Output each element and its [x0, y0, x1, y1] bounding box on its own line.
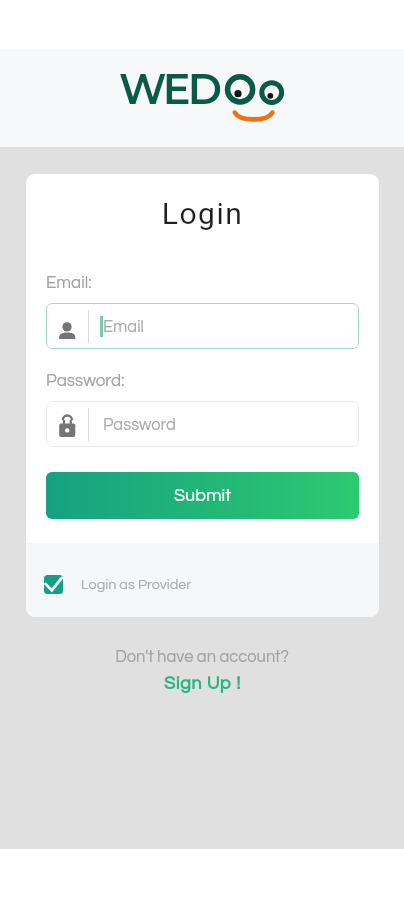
other: WEDOo home — [0, 49, 404, 147]
staticText: Login as Provider — [81, 577, 192, 592]
staticText: Sign Up ! — [164, 674, 241, 693]
staticText: Password — [103, 416, 176, 433]
staticText: WED — [119, 64, 219, 115]
staticText: Password: — [46, 372, 125, 390]
button[interactable]: Sign Up ! — [158, 672, 247, 695]
button[interactable]: Password — [46, 401, 359, 447]
staticText: Don't have an account? — [0, 648, 404, 665]
button[interactable]: Email — [46, 303, 359, 349]
button[interactable]: Login as Provider — [44, 552, 379, 617]
staticText: Email: — [46, 274, 92, 292]
button[interactable]: Submit — [46, 472, 359, 519]
staticText: Email — [103, 318, 144, 335]
staticText: Submit — [174, 486, 232, 505]
staticText: Login — [46, 196, 359, 231]
